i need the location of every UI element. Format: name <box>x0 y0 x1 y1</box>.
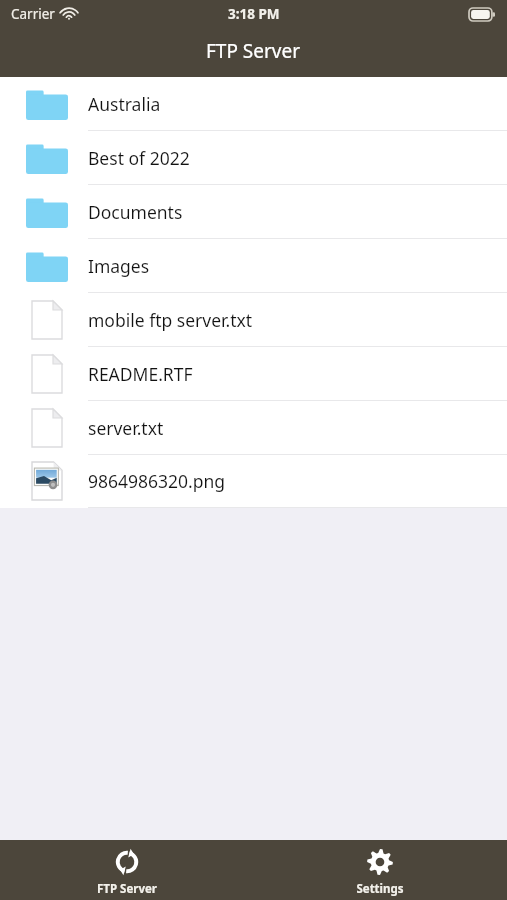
staticText: Documents <box>88 200 183 224</box>
button[interactable]: Best of 2022 <box>0 131 507 185</box>
staticText: Best of 2022 <box>88 146 190 170</box>
button[interactable]: 9864986320.png <box>0 455 507 508</box>
staticText: Carrier <box>11 5 55 23</box>
button[interactable]: README.RTF <box>0 347 507 401</box>
button[interactable]: Documents <box>0 185 507 239</box>
staticText: mobile ftp server.txt <box>88 308 253 332</box>
staticText: Images <box>88 254 150 278</box>
button[interactable]: server.txt <box>0 401 507 455</box>
staticText: FTP Server <box>97 881 157 897</box>
staticText: 9864986320.png <box>88 469 226 493</box>
button[interactable]: Settings <box>253 840 507 900</box>
staticText: FTP Server <box>206 38 301 64</box>
staticText: Australia <box>88 92 161 116</box>
staticText: 3:18 PM <box>228 5 280 23</box>
other: FTP Server <box>113 848 141 876</box>
button[interactable]: Images <box>0 239 507 293</box>
button[interactable]: mobile ftp server.txt <box>0 293 507 347</box>
staticText: server.txt <box>88 416 164 440</box>
staticText: README.RTF <box>88 362 193 386</box>
other: Settings <box>366 848 394 876</box>
staticText: Settings <box>356 881 404 897</box>
button[interactable]: FTP Server <box>0 840 253 900</box>
button[interactable]: Australia <box>0 77 507 131</box>
